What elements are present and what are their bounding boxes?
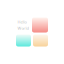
staticText: World	[17, 25, 28, 31]
staticText: Hello	[17, 19, 26, 24]
